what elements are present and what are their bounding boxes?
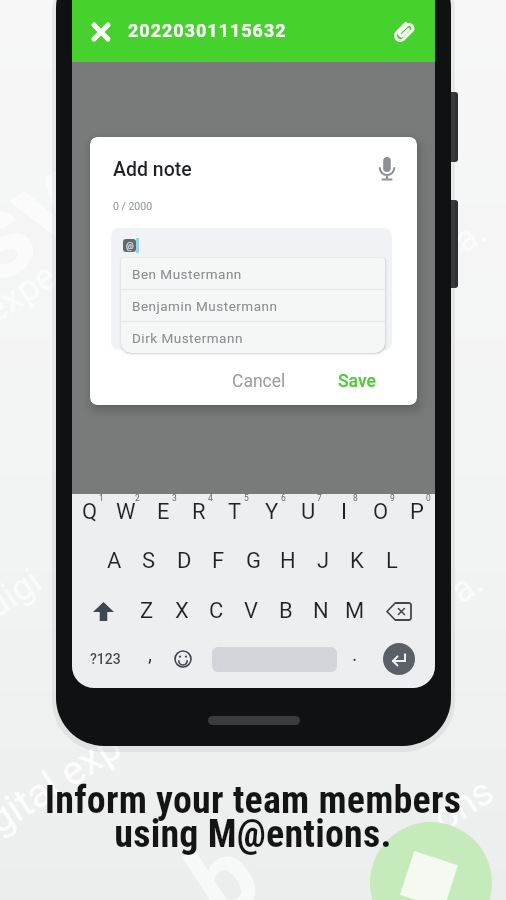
- button[interactable]: R: [182, 495, 216, 529]
- staticText: using M@entions.: [0, 812, 506, 857]
- button[interactable]: I: [327, 495, 361, 529]
- button[interactable]: O: [364, 495, 398, 529]
- button[interactable]: Q: [73, 495, 107, 529]
- staticText: Benjamin Mustermann: [132, 298, 278, 314]
- staticText: Q: [82, 499, 98, 525]
- button[interactable]: S: [132, 544, 166, 578]
- button[interactable]: J: [306, 544, 340, 578]
- button[interactable]: K: [340, 544, 374, 578]
- button[interactable]: C: [199, 594, 233, 628]
- staticText: Y: [265, 499, 279, 525]
- staticText: Dirk Mustermann: [132, 330, 243, 346]
- staticText: S: [142, 548, 156, 574]
- button[interactable]: A: [97, 544, 131, 578]
- staticText: M: [345, 598, 365, 624]
- button[interactable]: [381, 593, 417, 629]
- staticText: N: [313, 598, 329, 624]
- staticText: a.: [443, 560, 491, 612]
- staticText: 0 / 2000: [113, 200, 153, 212]
- staticText: D: [177, 548, 192, 574]
- button[interactable]: [381, 0, 435, 62]
- staticText: H: [280, 548, 296, 574]
- button[interactable]: T: [218, 495, 252, 529]
- button[interactable]: M: [338, 594, 372, 628]
- button[interactable]: N: [304, 594, 338, 628]
- staticText: T: [228, 499, 242, 525]
- staticText: @: [126, 241, 134, 251]
- staticText: K: [350, 548, 364, 574]
- staticText: Save: [338, 371, 376, 392]
- staticText: U: [301, 499, 316, 525]
- staticText: 20220301115632: [128, 20, 287, 41]
- staticText: ?123: [90, 651, 121, 667]
- staticText: R: [192, 499, 206, 525]
- staticText: 1: [99, 493, 104, 503]
- staticText: E: [157, 499, 170, 525]
- staticText: sy: [0, 128, 111, 313]
- button[interactable]: [85, 593, 121, 629]
- staticText: a.: [446, 210, 494, 262]
- staticText: Add note: [113, 158, 192, 181]
- staticText: 3: [172, 493, 177, 503]
- button[interactable]: Cancel: [216, 365, 302, 397]
- staticText: V: [244, 598, 259, 624]
- staticText: W: [116, 499, 136, 525]
- button[interactable]: E: [146, 495, 180, 529]
- staticText: expe: [0, 254, 64, 332]
- button[interactable]: L: [375, 544, 409, 578]
- button[interactable]: H: [271, 544, 305, 578]
- button[interactable]: ,: [133, 642, 167, 676]
- staticText: A: [107, 548, 122, 574]
- staticText: igital exp: [0, 722, 130, 849]
- staticText: 7: [317, 493, 322, 503]
- staticText: 4: [208, 493, 213, 503]
- staticText: I: [341, 499, 347, 525]
- button[interactable]: [72, 0, 128, 62]
- button[interactable]: [166, 642, 200, 676]
- staticText: 2: [135, 493, 140, 503]
- button[interactable]: Save: [320, 365, 394, 397]
- staticText: Cancel: [232, 371, 286, 392]
- staticText: P: [410, 499, 424, 525]
- button[interactable]: W: [109, 495, 143, 529]
- staticText: 9: [390, 493, 395, 503]
- button[interactable]: Z: [130, 594, 164, 628]
- button[interactable]: U: [291, 495, 325, 529]
- button[interactable]: .: [338, 642, 372, 676]
- button[interactable]: D: [167, 544, 201, 578]
- staticText: ,: [148, 642, 152, 665]
- button[interactable]: P: [400, 495, 434, 529]
- staticText: Inform your team members: [0, 778, 506, 823]
- staticText: 5: [244, 493, 249, 503]
- staticText: ons: [425, 768, 502, 841]
- staticText: F: [212, 548, 225, 574]
- staticText: 6: [281, 493, 286, 503]
- staticText: 8: [353, 493, 358, 503]
- staticText: G: [246, 548, 261, 574]
- staticText: Z: [140, 598, 154, 624]
- button[interactable]: ?123: [82, 642, 128, 676]
- button[interactable]: [383, 643, 415, 675]
- button[interactable]: Ben Mustermann: [121, 258, 385, 289]
- staticText: L: [386, 548, 398, 574]
- staticText: B: [279, 598, 293, 624]
- button[interactable]: F: [201, 544, 235, 578]
- staticText: C: [209, 598, 224, 624]
- button[interactable]: B: [269, 594, 303, 628]
- staticText: Ben Mustermann: [132, 266, 242, 282]
- button[interactable]: G: [236, 544, 270, 578]
- staticText: b: [168, 814, 279, 900]
- button[interactable]: V: [234, 594, 268, 628]
- staticText: .: [352, 642, 358, 665]
- staticText: O: [373, 499, 389, 525]
- button[interactable]: Y: [255, 495, 289, 529]
- button[interactable]: Benjamin Mustermann: [121, 290, 385, 321]
- staticText: J: [317, 548, 330, 574]
- button[interactable]: Dirk Mustermann: [121, 322, 385, 353]
- button[interactable]: X: [165, 594, 199, 628]
- staticText: X: [175, 598, 189, 624]
- staticText: 0: [426, 493, 431, 503]
